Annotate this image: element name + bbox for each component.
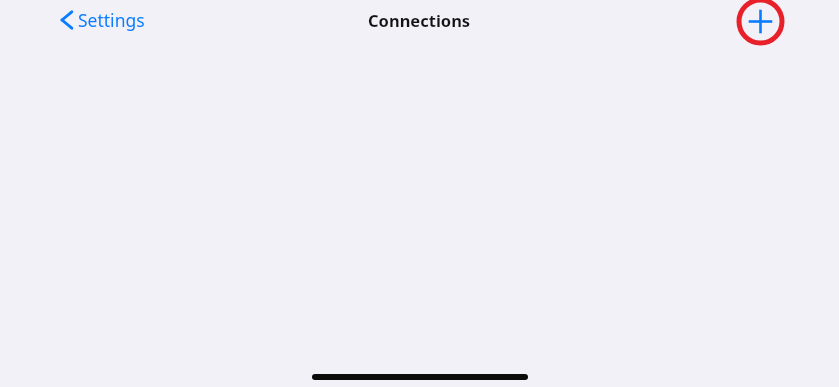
button[interactable]: Add connection [734,0,787,48]
staticText: Connections [368,9,471,31]
button[interactable]: Settings [54,4,151,36]
staticText: Settings [78,8,145,32]
